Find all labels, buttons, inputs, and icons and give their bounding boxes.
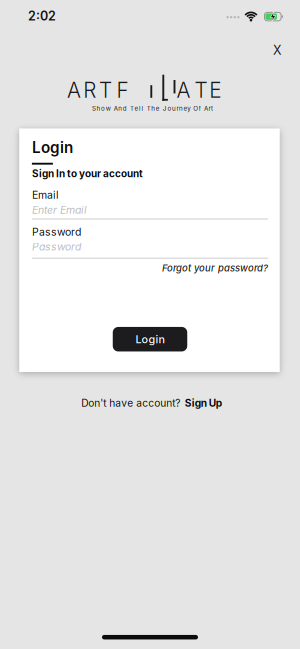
staticText: A xyxy=(67,78,81,103)
button[interactable]: Login xyxy=(113,327,187,351)
staticText: Sign In to your account xyxy=(32,167,143,180)
button[interactable]: Password xyxy=(32,239,268,259)
staticText: A xyxy=(177,78,191,103)
staticText: E xyxy=(209,78,221,103)
staticText: Sign Up xyxy=(185,397,222,409)
staticText: T xyxy=(99,78,112,103)
staticText: Show And Tell The Journey Of Art xyxy=(92,105,213,112)
staticText: 2:02 xyxy=(28,8,56,23)
staticText: Password xyxy=(32,240,81,253)
staticText: F xyxy=(116,78,128,103)
button[interactable]: Enter Email xyxy=(32,202,268,222)
staticText: R xyxy=(83,78,96,103)
button[interactable]: Forgot your password? xyxy=(32,262,268,274)
staticText: Login xyxy=(135,333,164,346)
staticText: Forgot your password? xyxy=(162,262,268,274)
staticText: X xyxy=(273,43,282,58)
staticText: Email xyxy=(32,189,59,201)
button[interactable]: Don't have account? xyxy=(81,397,222,409)
staticText: Enter Email xyxy=(32,204,87,216)
staticText: Login xyxy=(32,138,73,157)
button[interactable]: X xyxy=(265,38,289,62)
staticText: Password xyxy=(32,226,81,238)
staticText: T xyxy=(194,78,207,103)
staticText: Don't have account? xyxy=(81,397,180,409)
